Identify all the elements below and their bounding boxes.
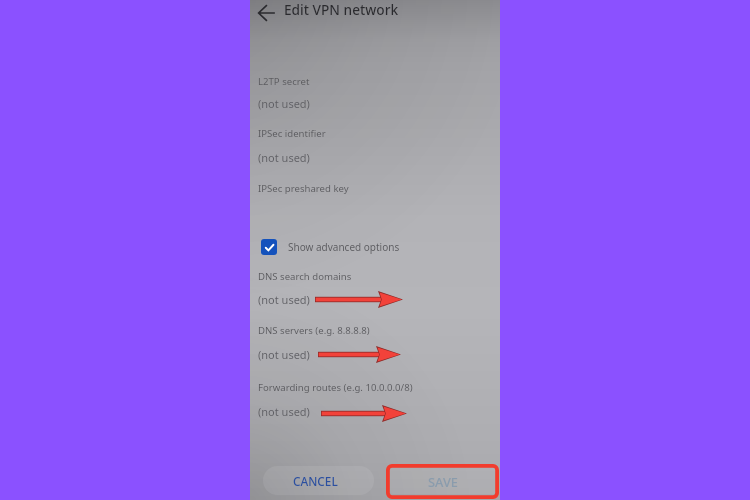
button[interactable]: Show advanced options [261,236,400,258]
staticText: IPSec identifier [258,127,326,140]
staticText: IPSec preshared key [258,182,349,195]
staticText: SAVE [428,473,458,490]
staticText: (not used) [258,292,310,307]
button[interactable]: Back [254,1,278,25]
staticText: L2TP secret [258,75,310,88]
staticText: (not used) [258,404,310,419]
staticText: DNS servers (e.g. 8.8.8.8) [258,324,370,337]
button[interactable]: CANCEL [263,466,374,495]
staticText: (not used) [258,347,310,362]
staticText: DNS search domains [258,270,352,283]
staticText: (not used) [258,150,310,165]
staticText: CANCEL [293,473,338,489]
staticText: (not used) [258,96,310,111]
button[interactable]: SAVE [390,468,496,494]
staticText: Edit VPN network [284,0,399,19]
staticText: Forwarding routes (e.g. 10.0.0.0/8) [258,381,413,394]
staticText: Show advanced options [288,240,400,254]
